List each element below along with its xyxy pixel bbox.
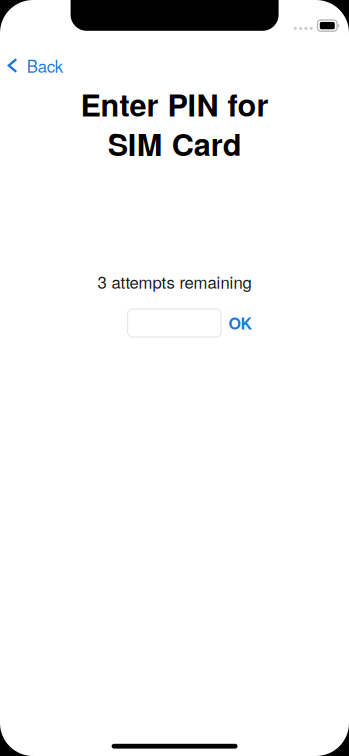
button[interactable]: OK — [222, 304, 258, 341]
staticText: Enter PIN for — [80, 82, 268, 126]
staticText: Back — [27, 54, 63, 77]
staticText: 3 attempts remaining — [97, 270, 251, 293]
button[interactable]: Back — [0, 46, 75, 85]
staticText: SIM Card — [108, 121, 242, 165]
staticText: OK — [228, 311, 252, 334]
